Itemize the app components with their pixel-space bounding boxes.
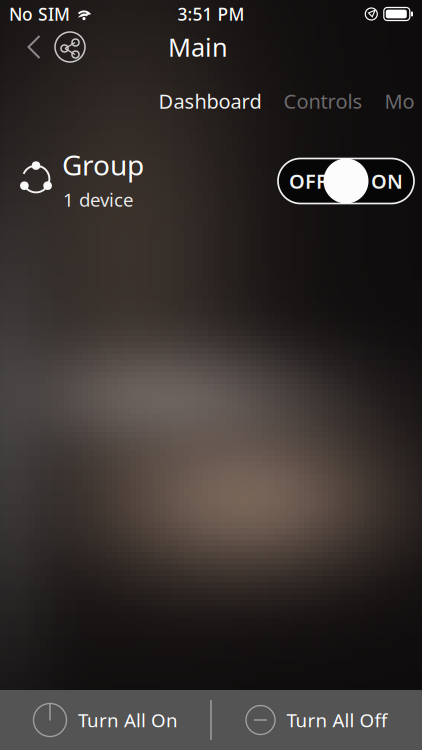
staticText: Turn All On xyxy=(78,708,178,732)
staticText: 3:51 PM xyxy=(177,2,244,25)
staticText: Controls xyxy=(283,88,362,114)
staticText: Mo xyxy=(384,88,414,114)
button[interactable]: Turn All On xyxy=(0,690,210,750)
button[interactable]: OFF xyxy=(278,158,414,203)
staticText: Main xyxy=(168,30,228,64)
button[interactable]: Back xyxy=(18,26,50,68)
staticText: Dashboard xyxy=(158,88,261,114)
staticText: 1 device xyxy=(63,187,134,212)
staticText: No SIM xyxy=(9,2,70,25)
button[interactable]: Dashboard xyxy=(158,86,261,116)
button[interactable]: Controls xyxy=(283,86,362,116)
staticText: Turn All Off xyxy=(286,708,387,732)
button[interactable]: Mo xyxy=(384,86,414,116)
button[interactable]: Share xyxy=(50,26,90,68)
button[interactable]: Turn All Off xyxy=(210,690,422,750)
staticText: OFF xyxy=(289,168,327,194)
staticText: Group xyxy=(62,146,144,183)
staticText: ON xyxy=(371,168,403,194)
